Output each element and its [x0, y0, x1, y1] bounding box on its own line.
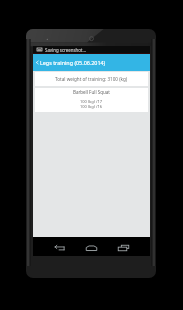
staticText: Saving screenshot...	[45, 47, 86, 53]
button[interactable]: Barbell Full Squat	[35, 88, 148, 112]
staticText: Total weight of training: 3100 (kg)	[55, 76, 128, 82]
button[interactable]: Total weight of training: 3100 (kg)	[35, 72, 148, 86]
button[interactable]: Back	[46, 238, 72, 257]
other: Navigate up	[34, 60, 39, 65]
button[interactable]: Navigate up	[33, 54, 150, 71]
other: Screenshot saved	[37, 48, 42, 51]
button[interactable]: Home	[78, 238, 104, 257]
staticText: 100 (kg) /17	[80, 99, 103, 104]
staticText: 100 (kg) /16	[80, 104, 103, 109]
staticText: Legs training (05.06.2014)	[40, 59, 106, 66]
staticText: Barbell Full Squat	[73, 89, 110, 95]
button[interactable]: Recent apps	[110, 238, 136, 257]
